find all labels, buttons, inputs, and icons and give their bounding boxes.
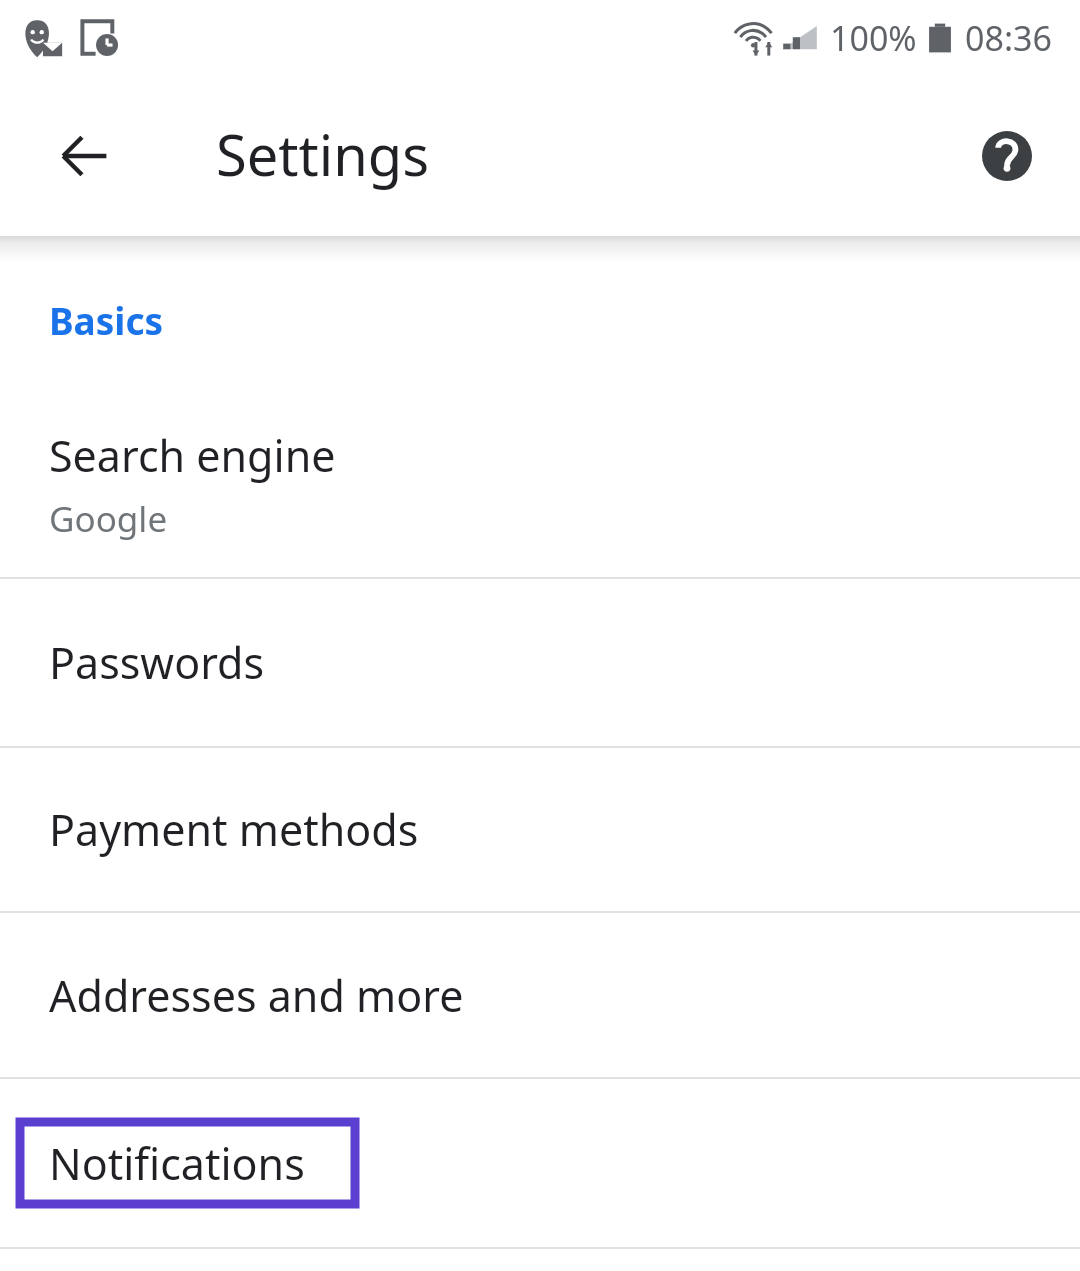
- staticText: Notifications: [49, 1134, 305, 1193]
- button[interactable]: Notifications: [0, 1079, 1080, 1247]
- staticText: Basics: [49, 295, 164, 345]
- button[interactable]: Search engine: [0, 392, 1080, 577]
- staticText: Passwords: [49, 633, 265, 692]
- staticText: Payment methods: [49, 800, 419, 859]
- staticText: Settings: [216, 116, 430, 192]
- staticText: Google: [49, 495, 168, 543]
- button[interactable]: Payment methods: [0, 748, 1080, 911]
- staticText: Addresses and more: [49, 966, 464, 1025]
- button[interactable]: Addresses and more: [0, 913, 1080, 1077]
- staticText: 100%: [830, 15, 917, 61]
- button[interactable]: Help: [959, 108, 1055, 204]
- button[interactable]: Passwords: [0, 579, 1080, 746]
- staticText: 08:36: [965, 15, 1052, 61]
- button[interactable]: Back: [36, 108, 132, 204]
- staticText: Search engine: [49, 426, 336, 485]
